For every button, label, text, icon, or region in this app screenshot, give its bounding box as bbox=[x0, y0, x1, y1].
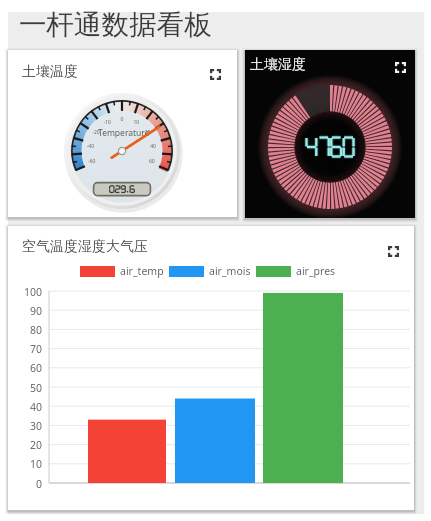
staticText: 20 bbox=[10, 438, 42, 452]
staticText: air_mois bbox=[209, 264, 251, 278]
staticText: 40 bbox=[10, 400, 42, 414]
staticText: 90 bbox=[10, 304, 42, 318]
button[interactable]: 土壤温度 bbox=[8, 50, 237, 217]
button[interactable]: air_pres bbox=[256, 264, 336, 278]
staticText: 70 bbox=[10, 342, 42, 356]
staticText: air_temp bbox=[120, 264, 164, 278]
button[interactable]: 土壤湿度 bbox=[245, 50, 415, 218]
staticText: 10 bbox=[10, 457, 42, 471]
staticText: 一杆通数据看板 bbox=[19, 8, 212, 43]
staticText: 0 bbox=[10, 477, 42, 491]
staticText: air_pres bbox=[296, 264, 336, 278]
staticText: 50 bbox=[10, 381, 42, 395]
button[interactable]: 空气温度湿度大气压 bbox=[8, 226, 414, 510]
staticText: 空气温度湿度大气压 bbox=[22, 238, 148, 256]
staticText: 30 bbox=[10, 419, 42, 433]
staticText: 80 bbox=[10, 323, 42, 337]
staticText: 100 bbox=[10, 285, 42, 299]
button[interactable]: Fullscreen bbox=[388, 246, 399, 257]
staticText: 土壤湿度 bbox=[250, 56, 306, 74]
button[interactable]: Fullscreen bbox=[395, 62, 406, 73]
button[interactable]: air_temp bbox=[80, 264, 164, 278]
button[interactable]: Fullscreen bbox=[210, 69, 221, 80]
button[interactable]: air_mois bbox=[169, 264, 251, 278]
staticText: 土壤温度 bbox=[22, 63, 78, 81]
staticText: 60 bbox=[10, 361, 42, 375]
